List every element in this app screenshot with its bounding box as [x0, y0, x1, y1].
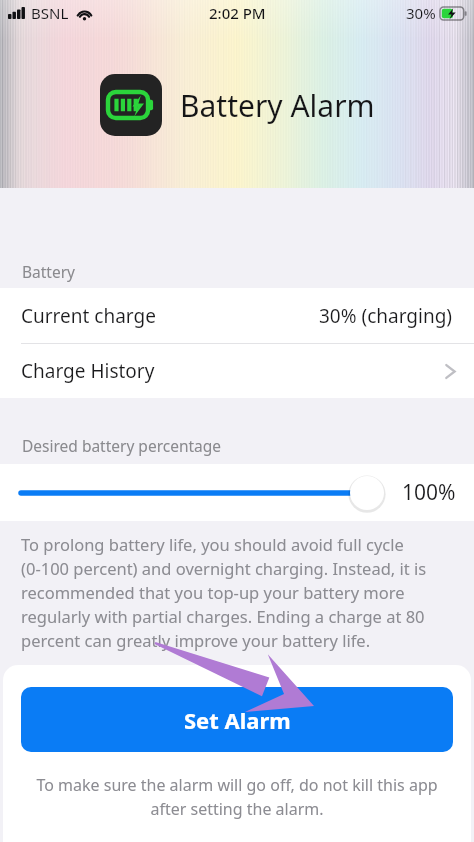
- staticText: Charge History: [21, 358, 155, 384]
- button[interactable]: Current charge: [0, 288, 474, 343]
- staticText: Current charge: [21, 303, 156, 329]
- staticText: BSNL: [31, 3, 69, 23]
- button[interactable]: [21, 473, 386, 513]
- staticText: 30% (charging): [319, 303, 453, 329]
- other: Open charge history: [445, 362, 456, 381]
- staticText: Desired battery percentage: [22, 435, 222, 456]
- button[interactable]: Set Alarm: [21, 687, 453, 752]
- staticText: To prolong battery life, you should avoi…: [21, 533, 454, 652]
- staticText: 2:02 PM: [209, 3, 266, 23]
- staticText: 100%: [402, 478, 456, 507]
- staticText: 30%: [406, 3, 436, 23]
- staticText: Battery Alarm: [180, 85, 375, 126]
- button[interactable]: Charge History: [0, 344, 474, 398]
- staticText: Battery: [22, 261, 76, 282]
- staticText: Set Alarm: [184, 705, 291, 735]
- staticText: To make sure the alarm will go off, do n…: [21, 774, 453, 820]
